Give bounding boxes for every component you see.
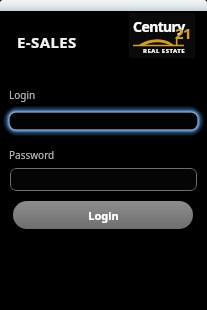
staticText: Century xyxy=(133,17,185,36)
staticText: Login xyxy=(9,88,36,102)
button[interactable]: Login xyxy=(13,201,193,229)
button[interactable] xyxy=(4,107,203,135)
other: Century 21 Real Estate logo xyxy=(129,13,195,58)
staticText: Password xyxy=(9,148,55,162)
staticText: 21 xyxy=(175,23,192,43)
staticText: REAL ESTATE xyxy=(143,47,186,55)
staticText: E-SALES xyxy=(17,32,77,52)
button[interactable] xyxy=(10,168,197,191)
staticText: Login xyxy=(88,208,119,223)
